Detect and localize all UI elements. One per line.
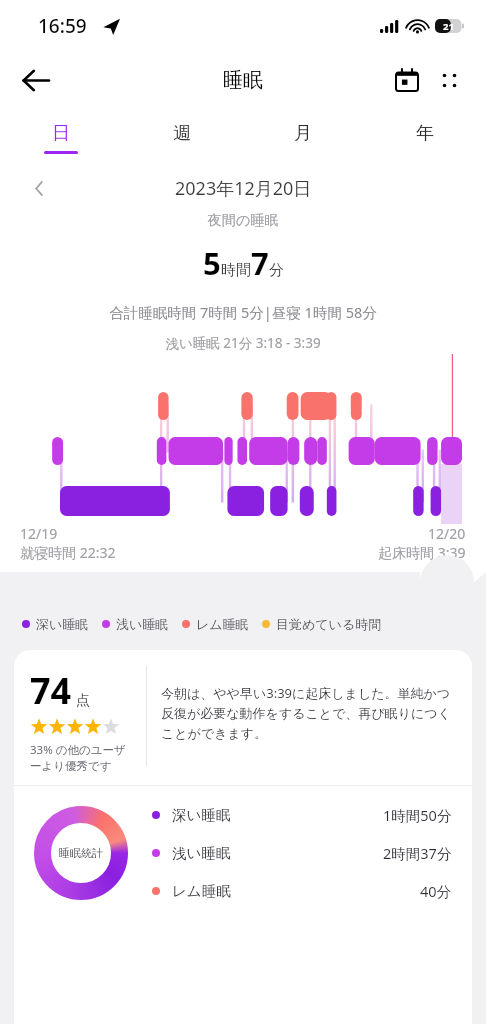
staticText: 2023年12月20日 — [175, 176, 312, 201]
staticText: 深い睡眠 — [172, 806, 231, 824]
button[interactable]: More options — [428, 59, 470, 101]
staticText: 12/20 — [428, 524, 466, 543]
staticText: 点 — [76, 692, 90, 710]
staticText: 74 — [30, 666, 72, 715]
staticText: 5 — [203, 242, 221, 284]
staticText: 睡眠統計 — [59, 846, 103, 860]
staticText: 日 — [52, 122, 70, 145]
staticText: 1時間50分 — [383, 805, 452, 825]
button[interactable]: 年 — [364, 108, 486, 168]
staticText: 40分 — [420, 881, 452, 901]
staticText: 月 — [294, 122, 312, 145]
staticText: 深い睡眠 — [36, 616, 89, 632]
staticText: 睡眠 — [223, 68, 263, 93]
staticText: 時間 — [221, 261, 251, 280]
staticText: 浅い睡眠 21分 3:18 - 3:39 — [0, 334, 486, 352]
button[interactable]: Calendar — [386, 59, 428, 101]
button[interactable]: Previous day — [20, 169, 58, 207]
staticText: 7 — [251, 242, 269, 284]
staticText: 浅い睡眠 — [172, 844, 231, 862]
button[interactable]: 週 — [121, 108, 242, 168]
staticText: レム睡眠 — [196, 616, 249, 632]
staticText: 起床時間 3:39 — [378, 543, 466, 562]
staticText: 浅い睡眠 — [116, 616, 169, 632]
staticText: 分 — [269, 261, 284, 280]
button[interactable]: 日 — [0, 108, 121, 168]
button[interactable]: 月 — [242, 108, 364, 168]
button[interactable]: 74 — [14, 650, 472, 1024]
staticText: 目覚めている時間 — [276, 616, 382, 632]
staticText: 合計睡眠時間 7時間 5分|昼寝 1時間 58分 — [0, 302, 486, 322]
button[interactable]: Back — [10, 55, 60, 105]
staticText: 33% の他のユーザーより優秀です — [30, 742, 132, 773]
staticText: 夜間の睡眠 — [0, 212, 486, 230]
staticText: 年 — [416, 122, 434, 145]
staticText: 週 — [173, 122, 191, 145]
staticText: 2時間37分 — [383, 843, 452, 863]
staticText: 12/19 — [20, 524, 58, 543]
staticText: 21 — [443, 20, 454, 33]
staticText: 今朝は、やや早い3:39に起床しました。単純かつ反復が必要な動作をすることで、再… — [161, 684, 460, 742]
staticText: 16:59 — [38, 13, 87, 39]
staticText: 就寝時間 22:32 — [20, 543, 116, 562]
staticText: レム睡眠 — [172, 882, 231, 900]
